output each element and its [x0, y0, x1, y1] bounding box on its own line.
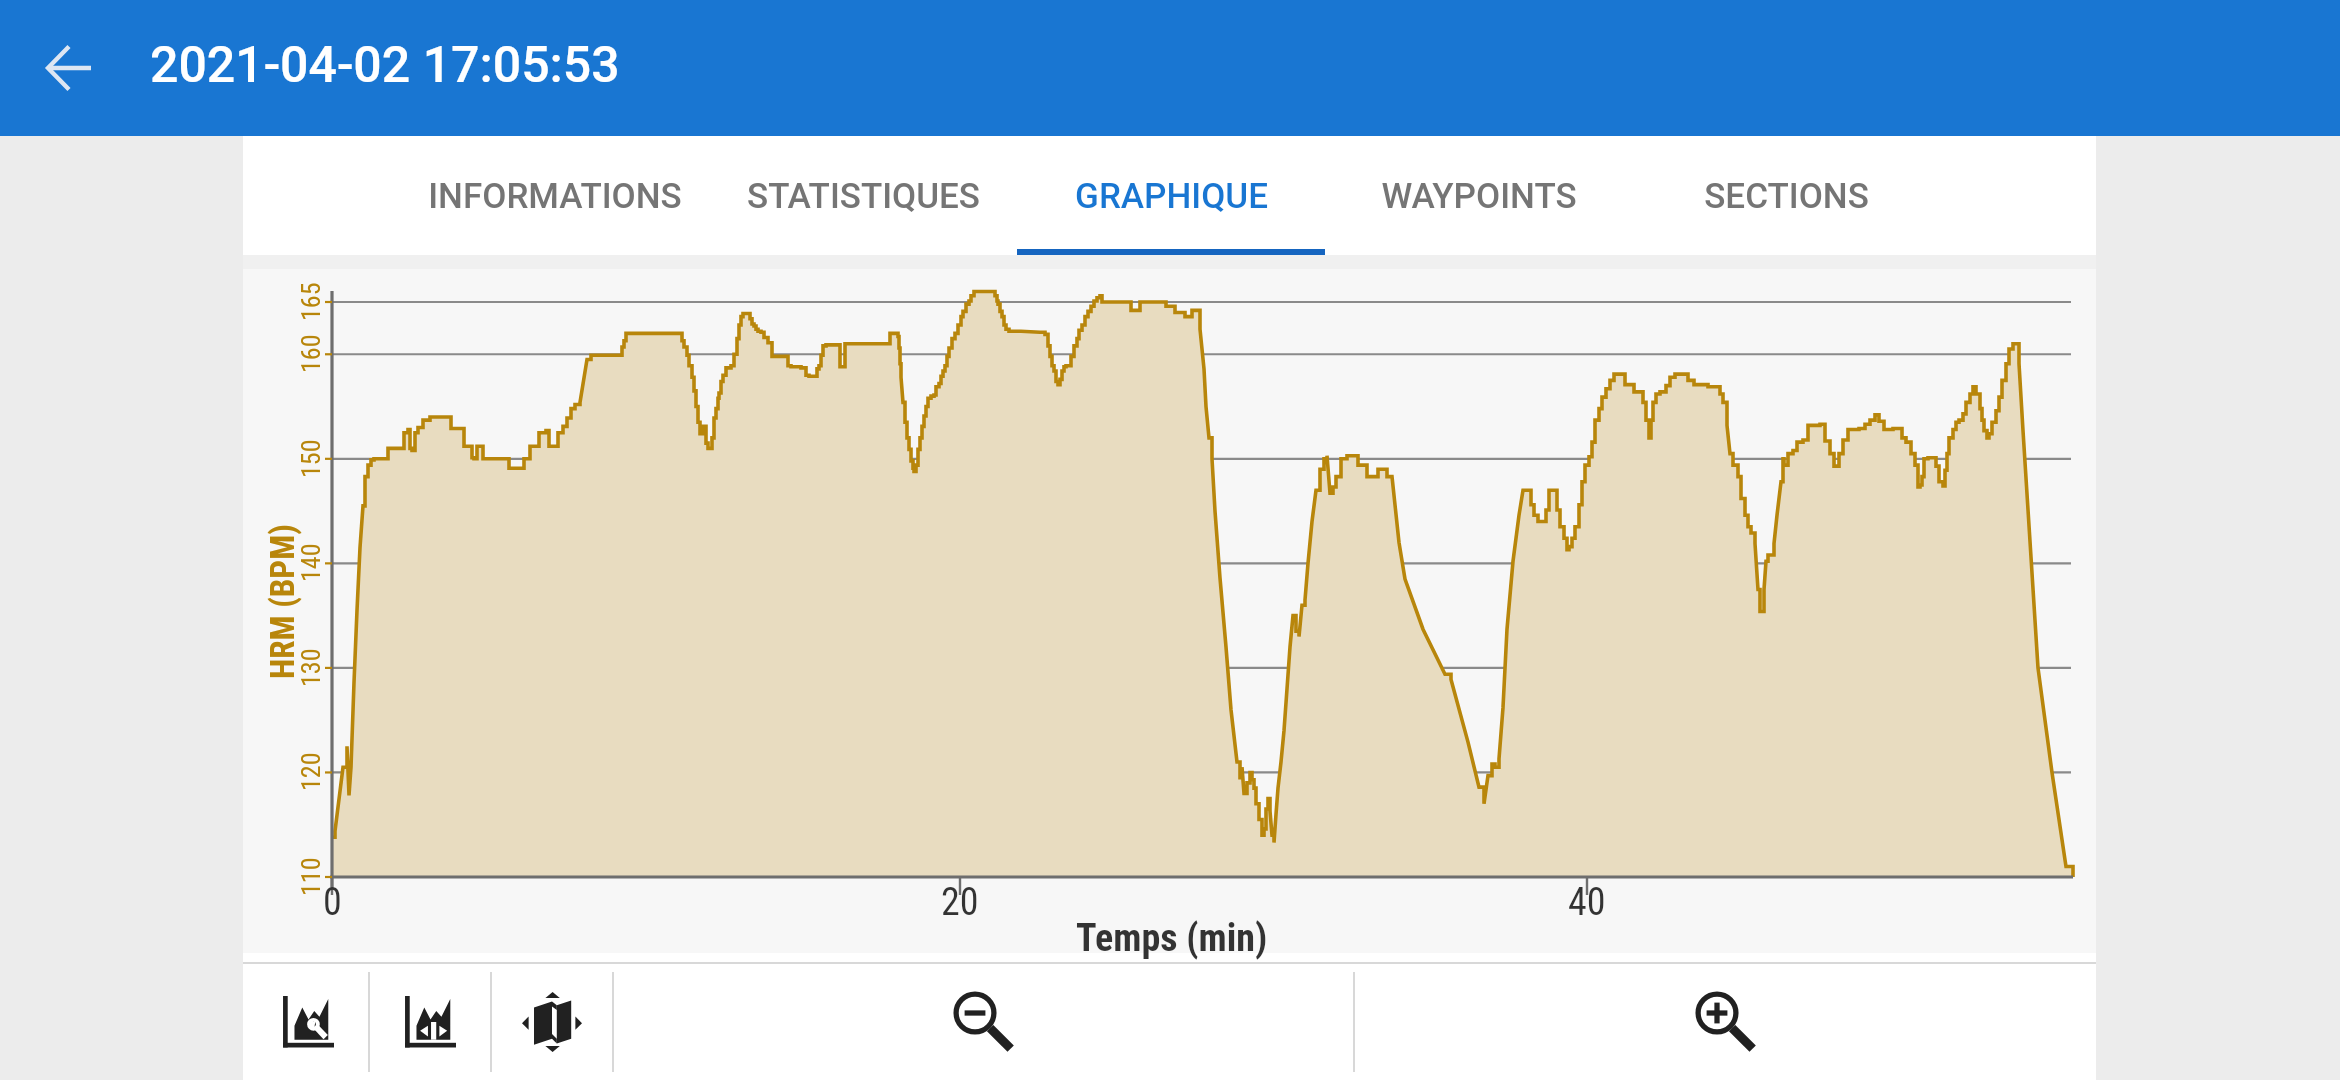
staticText: 120 — [296, 752, 326, 791]
button[interactable]: Chart settings — [248, 964, 368, 1080]
staticText: 0 — [323, 880, 342, 925]
button[interactable]: Zoom out — [614, 964, 1353, 1080]
staticText: 130 — [296, 648, 326, 687]
staticText: 140 — [296, 543, 326, 582]
staticText: Temps (min) — [1076, 916, 1268, 961]
button[interactable]: WAYPOINTS — [1325, 136, 1633, 256]
staticText: GRAPHIQUE — [1075, 176, 1268, 217]
staticText: 150 — [296, 439, 326, 478]
button[interactable]: Zoom in — [1355, 964, 2096, 1080]
staticText: 160 — [296, 334, 326, 373]
staticText: HRM (BPM) — [263, 524, 302, 679]
staticText: SECTIONS — [1704, 176, 1869, 217]
staticText: 110 — [296, 857, 326, 896]
staticText: INFORMATIONS — [428, 176, 682, 217]
staticText: WAYPOINTS — [1381, 176, 1577, 217]
button[interactable]: Map — [492, 964, 612, 1080]
button[interactable]: Chart pan — [370, 964, 490, 1080]
button[interactable]: SECTIONS — [1633, 136, 1939, 256]
button[interactable]: GRAPHIQUE — [1017, 136, 1325, 256]
staticText: 40 — [1568, 880, 1606, 925]
staticText: 2021-04-02 17:05:53 — [150, 36, 620, 95]
staticText: 20 — [941, 880, 979, 925]
button[interactable]: Back — [21, 20, 117, 116]
button[interactable]: INFORMATIONS — [401, 136, 709, 256]
staticText: 165 — [296, 282, 326, 321]
button[interactable]: STATISTIQUES — [709, 136, 1017, 256]
staticText: STATISTIQUES — [747, 176, 980, 217]
